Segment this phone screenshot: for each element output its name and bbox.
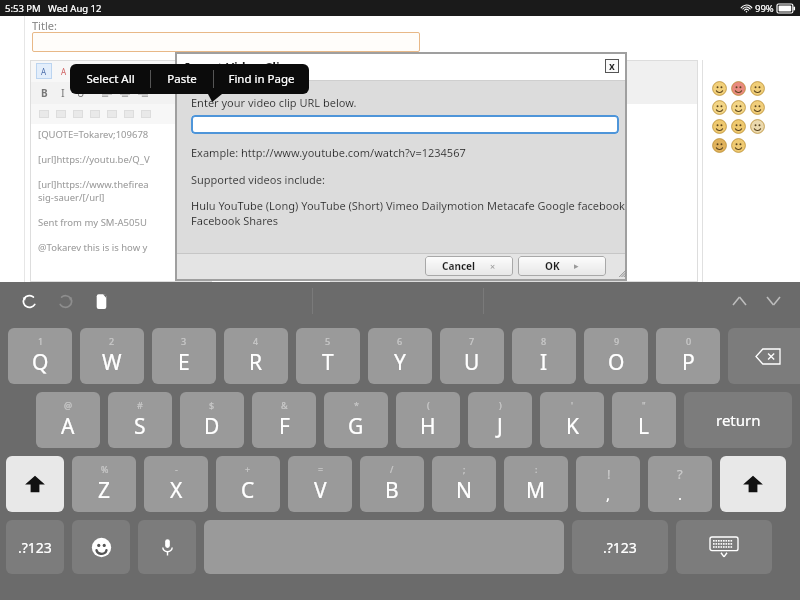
button[interactable]: Emoji 1 — [712, 81, 727, 96]
button[interactable]: Emoji 5 — [731, 100, 746, 115]
button[interactable]: Tool 2 — [70, 106, 86, 122]
button[interactable]: Clipboard — [86, 286, 116, 316]
button[interactable]: - — [144, 456, 208, 512]
button[interactable]: 8 — [512, 328, 576, 384]
staticText: Select All — [86, 71, 135, 87]
button[interactable]: # — [108, 392, 172, 448]
button[interactable]: Tool 1 — [53, 106, 69, 122]
button[interactable]: & — [252, 392, 316, 448]
button[interactable]: " — [612, 392, 676, 448]
button[interactable]: Redo — [50, 286, 80, 316]
staticText: W — [102, 348, 122, 377]
button[interactable]: = — [288, 456, 352, 512]
staticText: OK — [545, 259, 560, 273]
staticText: 2 — [109, 335, 115, 347]
button[interactable]: Text highlight — [56, 63, 72, 79]
button[interactable]: Emoji 4 — [712, 100, 727, 115]
button[interactable] — [32, 32, 420, 52]
staticText: 8 — [541, 335, 547, 347]
button[interactable]: U — [72, 84, 89, 101]
button[interactable]: Find in Page — [214, 64, 309, 94]
button[interactable]: 5 — [296, 328, 360, 384]
button[interactable]: I — [54, 84, 71, 101]
button[interactable]: return — [684, 392, 792, 448]
staticText: = — [318, 463, 324, 475]
button[interactable]: : — [504, 456, 568, 512]
button[interactable]: Tool 6 — [138, 106, 154, 122]
staticText: ▸ — [574, 261, 579, 271]
button[interactable]: 1 — [8, 328, 72, 384]
button[interactable]: ! — [576, 456, 640, 512]
staticText: * — [354, 399, 359, 411]
button[interactable]: Font color — [36, 63, 52, 79]
staticText: Wed Aug 12 — [48, 2, 102, 15]
staticText: 0 — [686, 335, 692, 347]
staticText: × — [490, 260, 496, 272]
button[interactable]: OK — [518, 256, 606, 276]
button[interactable]: Paste — [151, 64, 213, 94]
button[interactable]: Tool 5 — [121, 106, 137, 122]
button[interactable]: Emoji 9 — [750, 119, 765, 134]
staticText: Hulu YouTube (Long) YouTube (Short) Vime… — [191, 198, 639, 228]
button[interactable]: .?123 — [6, 520, 64, 574]
staticText: Cancel — [442, 259, 476, 273]
button[interactable]: Undo — [14, 286, 44, 316]
button[interactable]: Close — [605, 59, 619, 73]
button[interactable]: ; — [432, 456, 496, 512]
button[interactable]: Next — [756, 284, 790, 318]
button[interactable]: % — [72, 456, 136, 512]
button[interactable]: 2 — [80, 328, 144, 384]
button[interactable]: B — [36, 84, 53, 101]
button[interactable]: Select All — [70, 64, 150, 94]
button[interactable]: ' — [540, 392, 604, 448]
button[interactable] — [191, 115, 619, 134]
button[interactable]: Emoji 8 — [731, 119, 746, 134]
button[interactable]: Align 1 — [116, 84, 133, 101]
button[interactable]: * — [324, 392, 388, 448]
button[interactable]: Previous — [722, 284, 756, 318]
staticText: [url]https://www.thefirea — [38, 178, 149, 191]
button[interactable]: ( — [396, 392, 460, 448]
button[interactable]: 9 — [584, 328, 648, 384]
staticText: 99% — [755, 2, 774, 15]
button[interactable]: Align 2 — [134, 84, 151, 101]
button[interactable]: Emoji 2 — [731, 81, 746, 96]
button[interactable]: Align 0 — [98, 84, 115, 101]
button[interactable]: ) — [468, 392, 532, 448]
button[interactable]: Shift — [720, 456, 786, 512]
button[interactable]: Backspace — [728, 328, 800, 384]
button[interactable]: Emoji 7 — [712, 119, 727, 134]
button[interactable]: .?123 — [572, 520, 668, 574]
button[interactable]: $ — [180, 392, 244, 448]
button[interactable]: Tool 3 — [87, 106, 103, 122]
staticText: U — [77, 86, 85, 100]
button[interactable]: + — [216, 456, 280, 512]
button[interactable]: 0 — [656, 328, 720, 384]
staticText: 4 — [253, 335, 259, 347]
button[interactable]: Emoji 3 — [750, 81, 765, 96]
staticText: K — [566, 412, 579, 441]
staticText: Enter your video clip URL below. — [191, 95, 357, 110]
staticText: Title: — [32, 18, 57, 33]
button[interactable]: @ — [36, 392, 100, 448]
button[interactable]: Shift — [6, 456, 64, 512]
button[interactable]: Emoji 6 — [750, 100, 765, 115]
button[interactable]: 4 — [224, 328, 288, 384]
button[interactable]: Emoji 10 — [712, 138, 727, 153]
staticText: Q — [32, 348, 49, 377]
button[interactable]: ? — [648, 456, 712, 512]
button[interactable]: / — [360, 456, 424, 512]
staticText: I — [61, 86, 65, 100]
button[interactable]: 7 — [440, 328, 504, 384]
staticText: ( — [427, 399, 430, 411]
button[interactable]: Cancel — [425, 256, 513, 276]
button[interactable]: Emoji 11 — [731, 138, 746, 153]
button[interactable]: Tool 4 — [104, 106, 120, 122]
button[interactable]: Emoji — [72, 520, 130, 574]
button[interactable]: Voice input — [138, 520, 196, 574]
button[interactable]: 6 — [368, 328, 432, 384]
button[interactable]: Tool 0 — [36, 106, 52, 122]
button[interactable]: 3 — [152, 328, 216, 384]
button[interactable]: Hide keyboard — [676, 520, 772, 574]
